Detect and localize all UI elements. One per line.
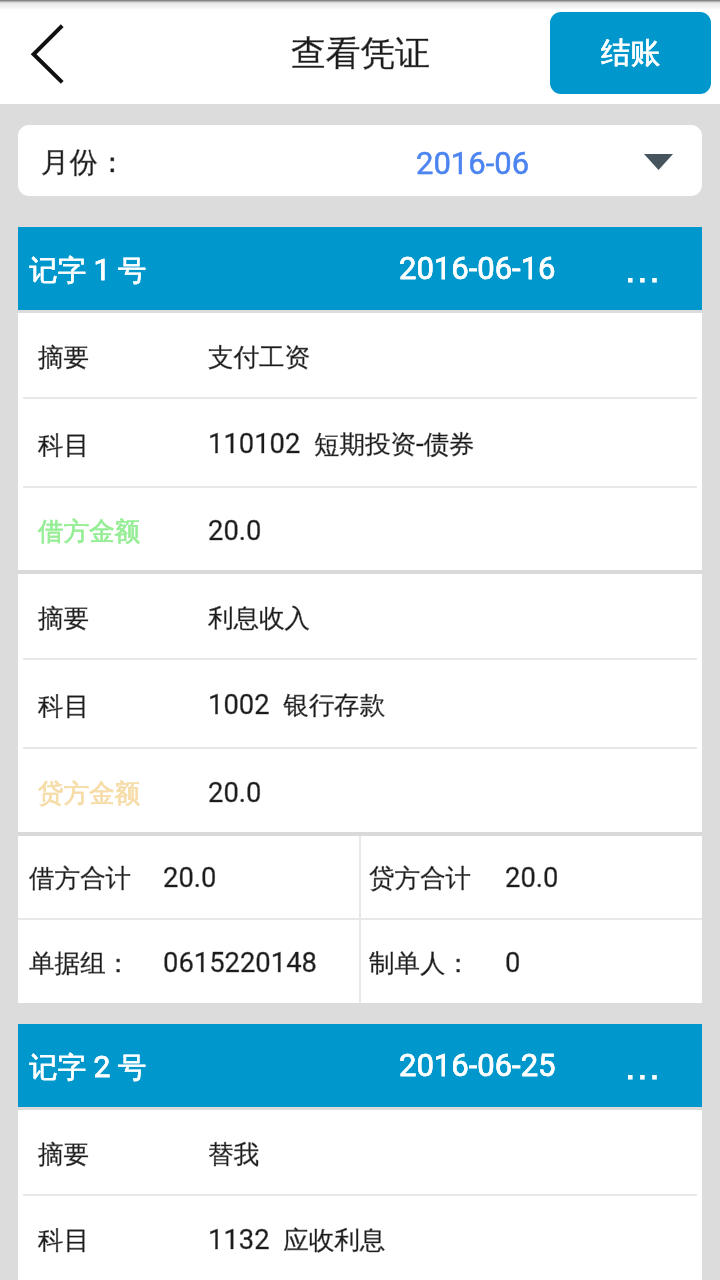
- staticText: 结账: [601, 34, 661, 71]
- button[interactable]: 摘要: [18, 1110, 702, 1194]
- staticText: 记字 2 号: [29, 1049, 147, 1085]
- staticText: 查看凭证: [291, 32, 430, 76]
- staticText: 2016-06-25: [399, 1047, 556, 1083]
- staticText: 借方合计: [29, 862, 131, 894]
- button[interactable]: 科目: [18, 1196, 702, 1280]
- button[interactable]: 制单人：: [361, 920, 702, 1003]
- staticText: 0: [505, 947, 521, 979]
- button[interactable]: 科目: [18, 399, 702, 486]
- staticText: 查看凭证: [291, 32, 430, 76]
- staticText: 110102 短期投资-债券: [208, 428, 475, 461]
- staticText: 20.0: [163, 862, 217, 894]
- staticText: 20.0: [208, 777, 262, 809]
- staticText: 贷方金额: [38, 777, 140, 809]
- staticText: 1132 应收利息: [208, 1224, 386, 1257]
- staticText: 摘要: [38, 1138, 89, 1170]
- staticText: 2016-06: [416, 145, 530, 181]
- staticText: 记字 1 号: [29, 252, 147, 288]
- staticText: 20.0: [208, 515, 262, 547]
- staticText: 贷方合计: [369, 862, 471, 894]
- staticText: 摘要: [38, 341, 89, 373]
- staticText: 记字 2 号: [29, 1049, 147, 1085]
- staticText: 1002 银行存款: [208, 689, 386, 722]
- staticText: 20.0: [208, 777, 262, 809]
- button[interactable]: 科目: [18, 660, 702, 747]
- staticText: 2016-06-16: [399, 250, 556, 286]
- staticText: 摘要: [38, 602, 89, 634]
- staticText: 0615220148: [163, 947, 317, 979]
- staticText: 替我: [208, 1138, 259, 1170]
- staticText: 支付工资: [208, 341, 310, 373]
- button[interactable]: 结账: [550, 12, 711, 94]
- button[interactable]: 记字 2 号: [18, 1024, 702, 1107]
- staticText: 2016-06-25: [399, 1047, 556, 1083]
- staticText: 科目: [38, 1224, 89, 1256]
- staticText: 支付工资: [208, 341, 310, 373]
- button[interactable]: Back: [4, 9, 90, 95]
- button[interactable]: 贷方金额: [18, 749, 702, 832]
- staticText: 制单人：: [369, 947, 471, 979]
- staticText: 110102 短期投资-债券: [208, 428, 475, 461]
- staticText: 单据组：: [29, 947, 131, 979]
- staticText: 20.0: [505, 862, 559, 894]
- staticText: 利息收入: [208, 602, 310, 634]
- staticText: 贷方金额: [38, 777, 140, 809]
- button[interactable]: 摘要: [18, 574, 702, 658]
- staticText: 记字 1 号: [29, 252, 147, 288]
- staticText: 科目: [38, 1224, 89, 1256]
- staticText: 摘要: [38, 341, 89, 373]
- staticText: 月份：: [41, 145, 127, 181]
- staticText: 20.0: [163, 862, 217, 894]
- staticText: 1002 银行存款: [208, 689, 386, 722]
- staticText: 20.0: [505, 862, 559, 894]
- staticText: 科目: [38, 690, 89, 722]
- staticText: 摘要: [38, 602, 89, 634]
- button[interactable]: 记字 1 号: [18, 227, 702, 310]
- staticText: 借方合计: [29, 862, 131, 894]
- staticText: 替我: [208, 1138, 259, 1170]
- staticText: 制单人：: [369, 947, 471, 979]
- staticText: 20.0: [208, 515, 262, 547]
- staticText: 0615220148: [163, 947, 317, 979]
- button[interactable]: 月份：: [18, 125, 702, 196]
- button[interactable]: 借方合计: [18, 836, 359, 918]
- button[interactable]: 单据组：: [18, 920, 359, 1003]
- staticText: 2016-06-16: [399, 250, 556, 286]
- staticText: 科目: [38, 429, 89, 461]
- button[interactable]: More options: [606, 1024, 702, 1107]
- staticText: 结账: [601, 34, 661, 71]
- staticText: 0: [505, 947, 521, 979]
- staticText: 借方金额: [38, 515, 140, 547]
- staticText: 科目: [38, 429, 89, 461]
- staticText: 月份：: [41, 145, 127, 181]
- staticText: 利息收入: [208, 602, 310, 634]
- staticText: 2016-06: [416, 145, 530, 181]
- staticText: 科目: [38, 690, 89, 722]
- staticText: 单据组：: [29, 947, 131, 979]
- button[interactable]: More options: [606, 227, 702, 310]
- button[interactable]: 摘要: [18, 313, 702, 397]
- staticText: 借方金额: [38, 515, 140, 547]
- button[interactable]: 贷方合计: [361, 836, 702, 918]
- staticText: 摘要: [38, 1138, 89, 1170]
- staticText: 贷方合计: [369, 862, 471, 894]
- staticText: 1132 应收利息: [208, 1224, 386, 1257]
- button[interactable]: 借方金额: [18, 488, 702, 570]
